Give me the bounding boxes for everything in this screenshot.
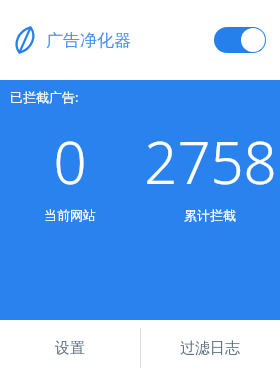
staticText: 设置 — [55, 339, 85, 358]
button[interactable]: 设置 — [0, 320, 140, 376]
staticText: 0 — [53, 122, 87, 201]
staticText: 累计拦截 — [184, 207, 236, 223]
staticText: 广告净化器 — [46, 30, 131, 51]
button[interactable]: 过滤日志 — [140, 320, 280, 376]
staticText: 2758 — [144, 122, 277, 201]
staticText: 过滤日志 — [180, 339, 240, 358]
staticText: 当前网站 — [44, 207, 96, 223]
other: Ad Purifier logo — [10, 25, 40, 55]
staticText: 已拦截广告: — [10, 88, 79, 106]
button[interactable]: Enable ad blocking — [214, 27, 266, 53]
